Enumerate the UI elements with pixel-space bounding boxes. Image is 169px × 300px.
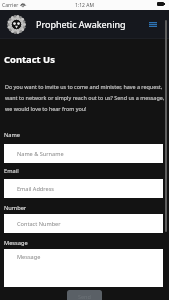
staticText: Name xyxy=(4,131,21,139)
staticText: Contact Us xyxy=(4,53,55,66)
button[interactable]: Contact Number xyxy=(4,214,163,233)
button[interactable]: Name & Surname xyxy=(4,144,163,163)
staticText: Email xyxy=(4,167,19,175)
staticText: Do you want to invite us to come and min… xyxy=(5,83,165,112)
staticText: Number xyxy=(4,204,27,212)
staticText: Name & Surname xyxy=(17,150,64,158)
button[interactable]: Send xyxy=(67,290,102,300)
staticText: Carrier xyxy=(2,2,19,9)
staticText: Email Address xyxy=(17,185,54,193)
staticText: Send xyxy=(78,293,91,300)
staticText: Message xyxy=(17,253,41,261)
staticText: Prophetic Awakening xyxy=(36,18,126,30)
staticText: Contact Number xyxy=(17,220,61,228)
button[interactable]: Message xyxy=(4,249,163,287)
staticText: 1:12 AM xyxy=(75,2,94,9)
button[interactable]: Open navigation menu xyxy=(145,17,160,32)
staticText: Message xyxy=(4,239,28,247)
button[interactable]: Email Address xyxy=(4,179,163,198)
